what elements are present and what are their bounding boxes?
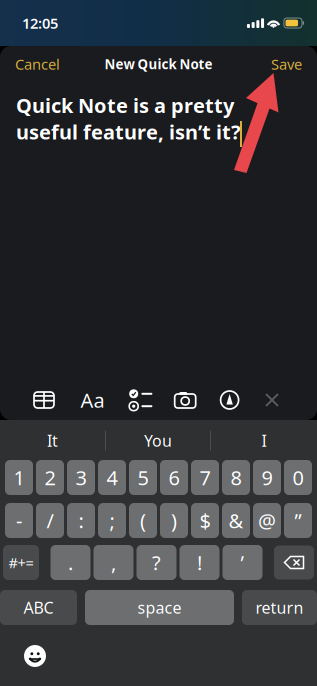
staticText: ABC [23,597,53,618]
staticText: 4 [106,464,117,491]
button[interactable]: @ [253,503,281,538]
button[interactable]: return [242,590,317,625]
button[interactable]: ( [129,503,157,538]
button[interactable]: Close [261,389,283,411]
button[interactable]: Markup [217,389,243,411]
staticText: New Quick Note [104,55,212,73]
staticText: ; [109,507,114,534]
staticText: ” [294,507,301,534]
staticText: return [255,597,303,618]
button[interactable]: ? [136,545,176,580]
staticText: Cancel [15,54,60,74]
button[interactable]: ; [98,503,126,538]
button[interactable]: Cancel [11,49,64,79]
staticText: Quick Note is a pretty useful feature, i… [16,92,241,145]
button[interactable]: & [222,503,250,538]
button[interactable]: : [67,503,95,538]
staticText: ) [171,507,177,534]
button[interactable]: $ [191,503,219,538]
button[interactable]: Checklist [128,389,154,411]
button[interactable]: #+= [3,545,39,580]
staticText: 8 [230,464,241,491]
staticText: 5 [137,464,148,491]
button[interactable]: ! [179,545,219,580]
staticText: . [68,549,73,576]
button[interactable]: , [93,545,133,580]
button[interactable]: It [0,423,105,458]
staticText: It [47,430,58,451]
staticText: 7 [199,464,210,491]
staticText: / [46,507,53,534]
button[interactable]: 1 [5,460,33,495]
button[interactable]: / [36,503,64,538]
staticText: 12:05 [22,13,58,33]
staticText: You [144,430,172,451]
staticText: ’ [240,549,244,576]
button[interactable]: 8 [222,460,250,495]
button[interactable]: Camera [172,389,198,411]
button[interactable]: Format [75,389,109,411]
button[interactable]: I [211,423,317,458]
button[interactable]: - [5,503,33,538]
button[interactable]: space [85,590,234,625]
button[interactable]: ’ [222,545,262,580]
staticText: 3 [75,464,86,491]
button[interactable]: You [105,423,211,458]
staticText: ( [140,507,146,534]
button[interactable]: Table [31,389,57,411]
button[interactable]: 2 [36,460,64,495]
button[interactable]: 4 [98,460,126,495]
staticText: Aa [80,387,104,413]
staticText: , [111,549,116,576]
button[interactable]: Delete [274,545,314,579]
button[interactable]: . [50,545,90,580]
button[interactable]: Save [267,49,306,79]
staticText: #+= [8,553,33,572]
button[interactable]: 6 [160,460,188,495]
staticText: Save [271,54,302,74]
staticText: ? [152,549,161,576]
staticText: & [228,507,243,534]
button[interactable]: ” [284,503,312,538]
button[interactable]: 9 [253,460,281,495]
button[interactable]: Emoji [24,645,46,667]
staticText: @ [258,507,276,534]
staticText: 6 [168,464,179,491]
button[interactable]: 0 [284,460,312,495]
staticText: - [16,507,22,534]
button[interactable]: 3 [67,460,95,495]
staticText: 2 [44,464,55,491]
button[interactable]: 5 [129,460,157,495]
staticText: 9 [261,464,272,491]
staticText: space [137,597,181,618]
staticText: $ [199,507,210,534]
button[interactable]: ABC [0,590,77,625]
staticText: 1 [13,464,24,491]
staticText: I [261,430,266,451]
staticText: : [78,507,83,534]
staticText: 0 [292,464,303,491]
button[interactable]: 7 [191,460,219,495]
button[interactable]: ) [160,503,188,538]
staticText: ! [197,549,202,576]
